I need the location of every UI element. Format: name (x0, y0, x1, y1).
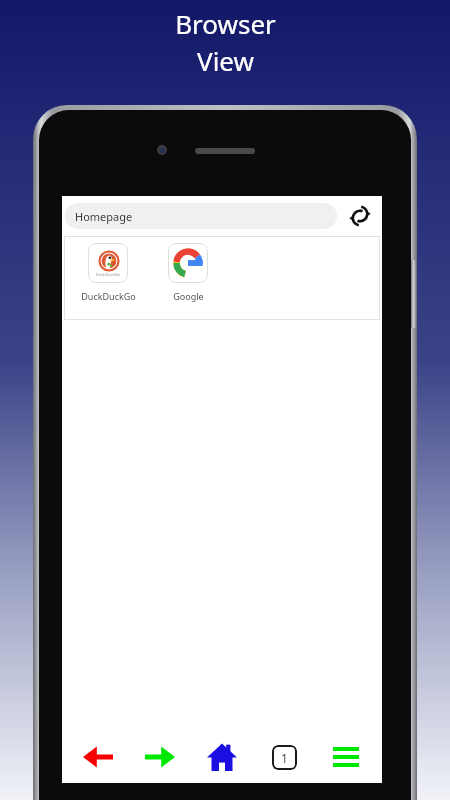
button[interactable]: Tabs (258, 735, 310, 779)
button[interactable]: DuckDuckGo (79, 243, 137, 302)
staticText: Homepage (75, 209, 133, 224)
button[interactable]: Refresh (343, 199, 377, 233)
button[interactable]: Forward (134, 735, 186, 779)
button[interactable]: Home (196, 735, 248, 779)
staticText: DuckDuckGo (81, 290, 136, 302)
staticText: Google (173, 290, 204, 302)
staticText: DuckDuckGo (96, 272, 121, 277)
button[interactable]: Back (72, 735, 124, 779)
button[interactable]: Menu (320, 735, 372, 779)
button[interactable]: Homepage (65, 203, 337, 229)
staticText: Browser (175, 6, 276, 41)
button[interactable]: Google (159, 243, 217, 302)
staticText: View (197, 43, 254, 78)
staticText: 1 (281, 750, 288, 766)
